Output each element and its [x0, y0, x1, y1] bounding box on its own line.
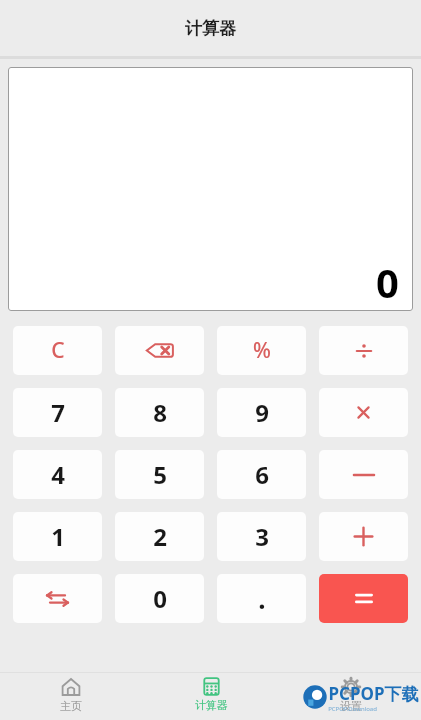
button[interactable]: 8 — [115, 388, 204, 437]
button[interactable]: C — [13, 326, 102, 375]
button[interactable]: % — [217, 326, 306, 375]
staticText: 1 — [51, 520, 65, 553]
staticText: 0 — [376, 255, 399, 309]
staticText: PCPOP下载 — [328, 682, 419, 705]
button[interactable]: 设置 — [281, 673, 421, 720]
button[interactable]: 3 — [217, 512, 306, 561]
button[interactable]: 7 — [13, 388, 102, 437]
staticText: 3 — [255, 520, 269, 553]
button[interactable]: 1 — [13, 512, 102, 561]
staticText: % — [253, 336, 271, 365]
staticText: 2 — [153, 520, 167, 553]
staticText: 4 — [51, 458, 65, 491]
button[interactable]: 6 — [217, 450, 306, 499]
staticText: 计算器 — [195, 698, 228, 712]
staticText: 7 — [51, 396, 65, 429]
button[interactable]: 5 — [115, 450, 204, 499]
staticText: 9 — [255, 396, 269, 429]
staticText: 主页 — [60, 699, 82, 713]
button[interactable]: 计算器 — [141, 673, 281, 720]
button[interactable]: Backspace — [115, 326, 204, 375]
button[interactable]: 2 — [115, 512, 204, 561]
staticText: 6 — [255, 458, 269, 491]
button[interactable]: Minus — [319, 450, 408, 499]
button[interactable]: . — [217, 574, 306, 623]
staticText: PCPOP.Download — [328, 705, 377, 713]
button[interactable]: Swap — [13, 574, 102, 623]
button[interactable]: Plus — [319, 512, 408, 561]
staticText: . — [258, 581, 266, 616]
button[interactable]: Divide — [319, 326, 408, 375]
button[interactable]: 0 — [115, 574, 204, 623]
button[interactable]: 4 — [13, 450, 102, 499]
button[interactable]: Equals — [319, 574, 408, 623]
button[interactable]: 9 — [217, 388, 306, 437]
button[interactable]: 主页 — [0, 673, 141, 720]
button[interactable]: Multiply — [319, 388, 408, 437]
staticText: 8 — [153, 396, 167, 429]
staticText: 0 — [153, 582, 167, 615]
staticText: 计算器 — [185, 18, 236, 39]
staticText: 5 — [153, 458, 167, 491]
staticText: C — [51, 336, 65, 365]
staticText: 设置 — [340, 699, 362, 713]
